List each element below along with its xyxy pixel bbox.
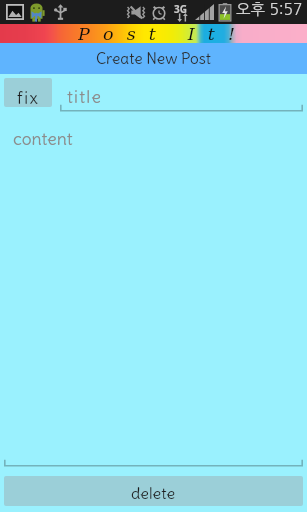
staticText: 3G	[174, 2, 187, 16]
button[interactable]: content	[4, 116, 303, 467]
staticText: Create New Post	[96, 49, 212, 68]
button[interactable]: fix	[4, 78, 52, 107]
button[interactable]: delete	[4, 476, 303, 506]
staticText: P o s t I t !	[78, 24, 239, 43]
staticText: title	[67, 86, 103, 108]
button[interactable]: title	[60, 78, 303, 112]
button[interactable]: Create New Post	[0, 43, 307, 74]
staticText: fix	[17, 87, 40, 107]
staticText: 오후 5:57	[236, 2, 303, 17]
staticText: content	[13, 128, 73, 150]
staticText: delete	[131, 483, 176, 503]
